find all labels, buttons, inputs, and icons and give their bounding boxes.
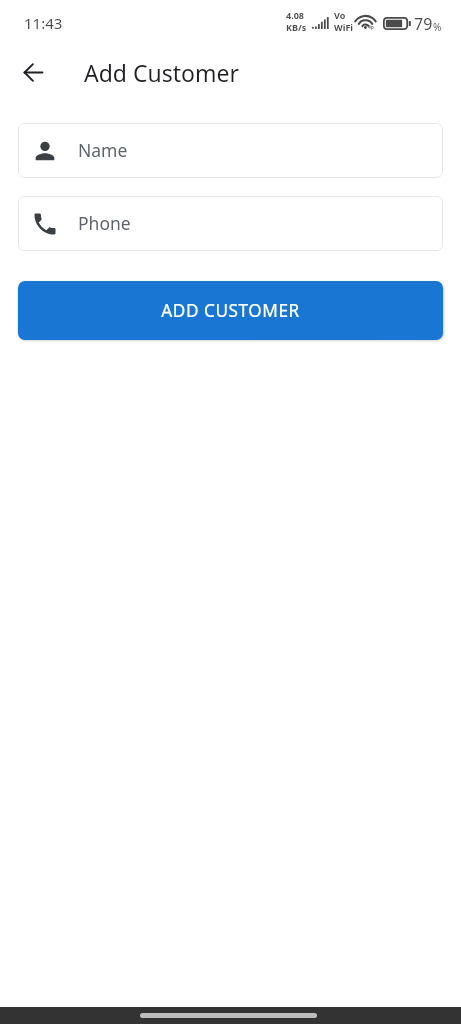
button[interactable]: Back — [15, 55, 51, 91]
staticText: Phone — [78, 211, 131, 235]
staticText: 11:43 — [24, 13, 63, 33]
staticText: % — [433, 20, 442, 34]
staticText: ADD CUSTOMER — [161, 299, 300, 322]
button[interactable]: ADD CUSTOMER — [18, 281, 443, 340]
staticText: 4p — [368, 24, 375, 31]
staticText: Add Customer — [84, 57, 239, 88]
staticText: Name — [78, 138, 128, 162]
staticText: 79 — [414, 13, 433, 35]
staticText: WiFi — [334, 21, 354, 33]
button[interactable]: Name — [18, 123, 443, 178]
staticText: 4.08 — [286, 9, 304, 21]
staticText: Vo — [334, 9, 346, 21]
staticText: KB/s — [286, 21, 307, 33]
button[interactable]: Phone — [18, 196, 443, 251]
